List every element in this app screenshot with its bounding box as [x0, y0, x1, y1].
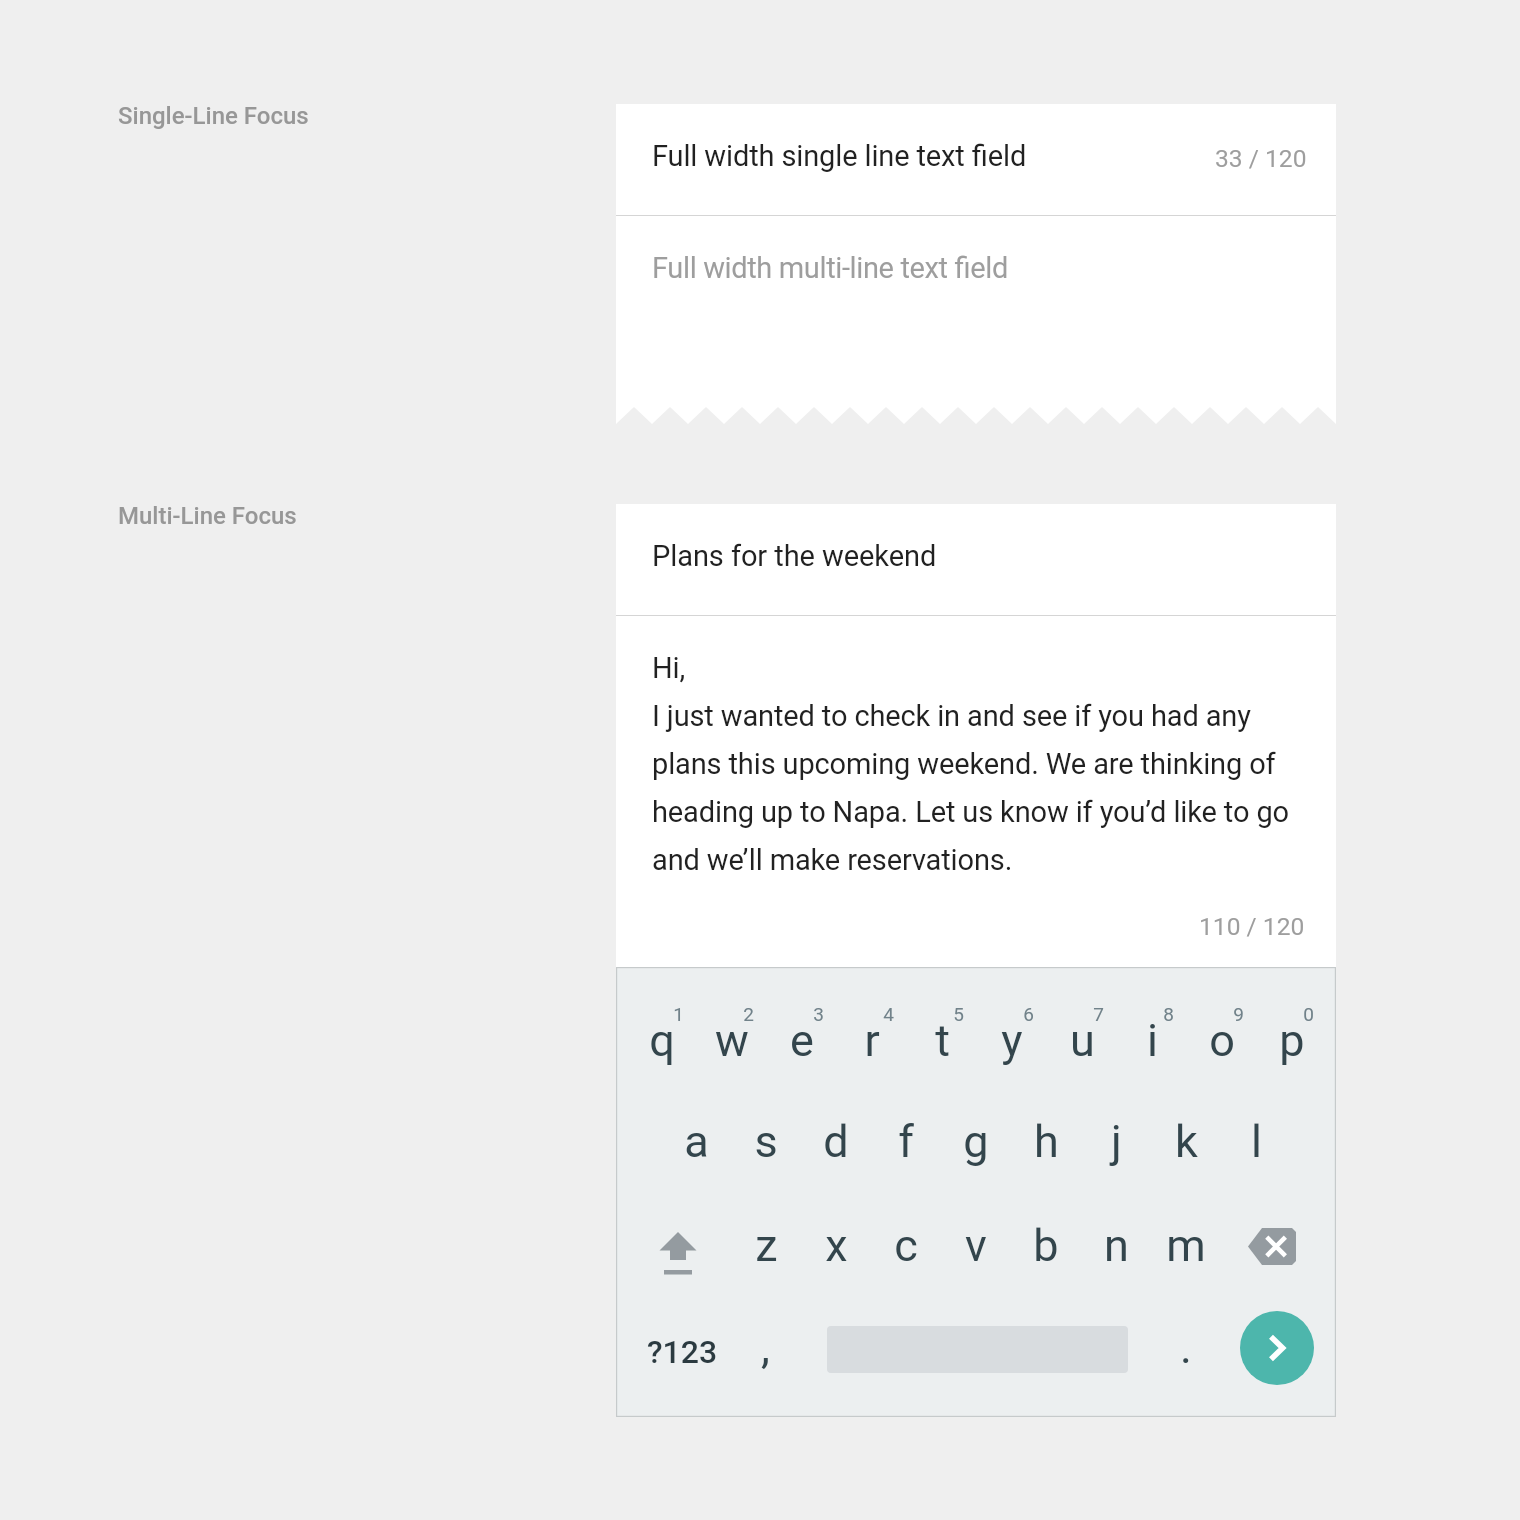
button[interactable]: k — [1151, 1110, 1221, 1172]
staticText: Hi, I just wanted to check in and see if… — [652, 651, 1289, 877]
staticText: s — [754, 1115, 778, 1168]
staticText: j — [1111, 1115, 1122, 1168]
button[interactable]: , — [730, 1316, 800, 1378]
button[interactable]: q — [627, 1009, 697, 1071]
button[interactable]: w — [697, 1009, 767, 1071]
staticText: 4 — [883, 1003, 894, 1025]
staticText: z — [755, 1219, 778, 1272]
button[interactable]: Shift — [642, 1227, 714, 1283]
staticText: d — [823, 1115, 849, 1168]
staticText: Multi-Line Focus — [118, 502, 297, 530]
button[interactable]: ?123 — [639, 1322, 729, 1376]
staticText: Plans for the weekend — [652, 539, 937, 573]
staticText: x — [825, 1219, 848, 1272]
staticText: 9 — [1233, 1003, 1244, 1025]
button[interactable]: i — [1117, 1009, 1187, 1071]
staticText: e — [790, 1014, 814, 1067]
button[interactable]: r — [837, 1009, 907, 1071]
staticText: 3 — [813, 1003, 824, 1025]
staticText: Full width multi-line text field — [652, 251, 1008, 285]
staticText: 8 — [1163, 1003, 1174, 1025]
staticText: 110 / 120 — [1199, 912, 1305, 941]
staticText: f — [898, 1115, 914, 1168]
staticText: 1 — [673, 1003, 684, 1025]
button[interactable]: y — [977, 1009, 1047, 1071]
staticText: a — [684, 1115, 709, 1168]
button[interactable]: g — [941, 1110, 1011, 1172]
staticText: l — [1251, 1115, 1262, 1168]
staticText: n — [1104, 1219, 1129, 1272]
staticText: b — [1033, 1219, 1059, 1272]
staticText: r — [864, 1014, 880, 1067]
button[interactable]: Plans for the weekend — [616, 504, 1336, 615]
staticText: p — [1279, 1014, 1305, 1067]
staticText: ?123 — [647, 1333, 718, 1371]
button[interactable]: e — [767, 1009, 837, 1071]
button[interactable]: s — [731, 1110, 801, 1172]
button[interactable]: Full width single line text field — [616, 104, 1336, 215]
staticText: Full width single line text field — [652, 139, 1027, 173]
staticText: 33 / 120 — [1215, 144, 1307, 173]
button[interactable]: p — [1257, 1009, 1327, 1071]
button[interactable]: t — [907, 1009, 977, 1071]
button[interactable]: v — [941, 1214, 1011, 1276]
staticText: o — [1209, 1014, 1235, 1067]
button[interactable]: a — [661, 1110, 731, 1172]
button[interactable]: h — [1011, 1110, 1081, 1172]
staticText: w — [715, 1014, 749, 1067]
button[interactable]: j — [1081, 1110, 1151, 1172]
button[interactable]: Enter — [1240, 1311, 1314, 1385]
button[interactable]: Full width multi-line text field — [616, 216, 1336, 407]
button[interactable]: n — [1081, 1214, 1151, 1276]
button[interactable]: o — [1187, 1009, 1257, 1071]
staticText: c — [894, 1219, 918, 1272]
staticText: y — [1001, 1014, 1023, 1067]
button[interactable]: . — [1151, 1316, 1221, 1378]
staticText: v — [965, 1219, 987, 1272]
button[interactable]: u — [1047, 1009, 1117, 1071]
staticText: 6 — [1023, 1003, 1034, 1025]
staticText: 0 — [1303, 1003, 1314, 1025]
staticText: u — [1070, 1014, 1095, 1067]
staticText: k — [1175, 1115, 1198, 1168]
staticText: 7 — [1093, 1003, 1104, 1025]
button[interactable]: b — [1011, 1214, 1081, 1276]
staticText: g — [963, 1115, 989, 1168]
button[interactable]: Backspace — [1248, 1228, 1296, 1265]
button[interactable]: c — [871, 1214, 941, 1276]
staticText: 5 — [953, 1003, 964, 1025]
staticText: . — [1180, 1321, 1192, 1374]
staticText: m — [1166, 1219, 1206, 1272]
staticText: i — [1147, 1014, 1158, 1067]
button[interactable]: f — [871, 1110, 941, 1172]
button[interactable]: m — [1151, 1214, 1221, 1276]
staticText: , — [761, 1321, 770, 1374]
staticText: h — [1034, 1115, 1059, 1168]
button[interactable]: Hi, I just wanted to check in and see if… — [616, 616, 1336, 968]
staticText: 2 — [743, 1003, 754, 1025]
button[interactable]: z — [731, 1214, 801, 1276]
button[interactable]: l — [1221, 1110, 1291, 1172]
button[interactable]: d — [801, 1110, 871, 1172]
button[interactable]: x — [801, 1214, 871, 1276]
staticText: t — [935, 1014, 950, 1067]
staticText: q — [649, 1014, 675, 1067]
staticText: Single-Line Focus — [118, 102, 309, 130]
